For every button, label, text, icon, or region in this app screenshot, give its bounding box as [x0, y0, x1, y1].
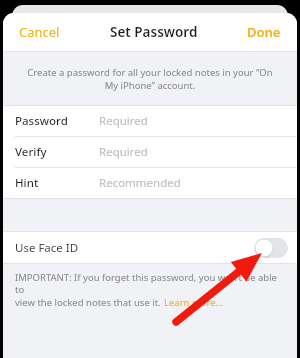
staticText: Done	[247, 23, 281, 41]
button[interactable]: Hint	[3, 168, 297, 198]
staticText: view the locked notes that use it.	[15, 296, 164, 309]
staticText: Cancel	[19, 23, 60, 41]
staticText: Required	[99, 113, 148, 129]
staticText: IMPORTANT: If you forget this password, …	[15, 271, 283, 296]
staticText: Recommended	[99, 175, 181, 191]
button[interactable]: Use Face ID toggle	[254, 238, 288, 258]
staticText: Password	[15, 113, 68, 129]
staticText: Required	[99, 144, 148, 160]
button[interactable]: Use Face ID	[3, 232, 297, 263]
button[interactable]: Password	[3, 106, 297, 136]
staticText: Hint	[15, 175, 39, 191]
button[interactable]: Learn more...	[164, 296, 224, 309]
staticText: Create a password for all your locked no…	[25, 66, 275, 92]
button[interactable]: Done	[243, 19, 285, 45]
button[interactable]: Verify	[3, 137, 297, 167]
staticText: Learn more...	[164, 296, 224, 309]
staticText: Set Password	[110, 23, 198, 41]
staticText: Use Face ID	[15, 240, 79, 256]
staticText: Verify	[15, 144, 47, 160]
button[interactable]: Cancel	[15, 19, 64, 45]
